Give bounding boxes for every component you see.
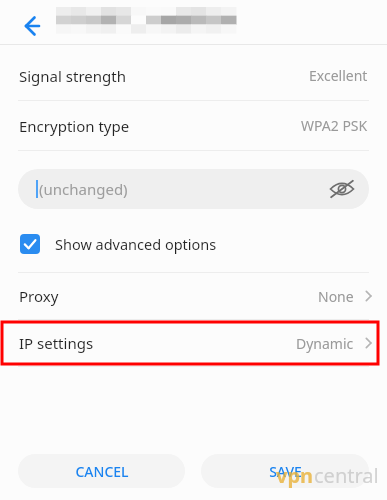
- staticText: WPA2 PSK: [301, 116, 368, 135]
- button[interactable]: SAVE: [201, 454, 369, 488]
- staticText: vpn: [276, 462, 314, 489]
- staticText: Show advanced options: [55, 234, 217, 254]
- staticText: IP settings: [19, 333, 94, 353]
- staticText: (unchanged): [39, 179, 128, 199]
- button[interactable]: (unchanged): [18, 169, 369, 209]
- button[interactable]: CANCEL: [18, 454, 185, 488]
- staticText: central: [314, 462, 379, 489]
- staticText: None: [318, 287, 354, 306]
- staticText: SAVE: [269, 462, 302, 481]
- button[interactable]: Signal strength: [0, 51, 387, 100]
- staticText: Encryption type: [19, 116, 130, 136]
- staticText: Dynamic: [296, 334, 354, 353]
- button[interactable]: Encryption type: [0, 101, 387, 150]
- staticText: Signal strength: [19, 66, 126, 86]
- button[interactable]: Back: [10, 7, 48, 45]
- button[interactable]: Proxy: [0, 273, 387, 319]
- staticText: CANCEL: [75, 462, 129, 481]
- staticText: Proxy: [19, 286, 59, 306]
- staticText: Excellent: [309, 66, 368, 85]
- button[interactable]: Show advanced options: [0, 226, 387, 262]
- button[interactable]: IP settings: [0, 320, 387, 366]
- button[interactable]: Show password: [325, 172, 359, 206]
